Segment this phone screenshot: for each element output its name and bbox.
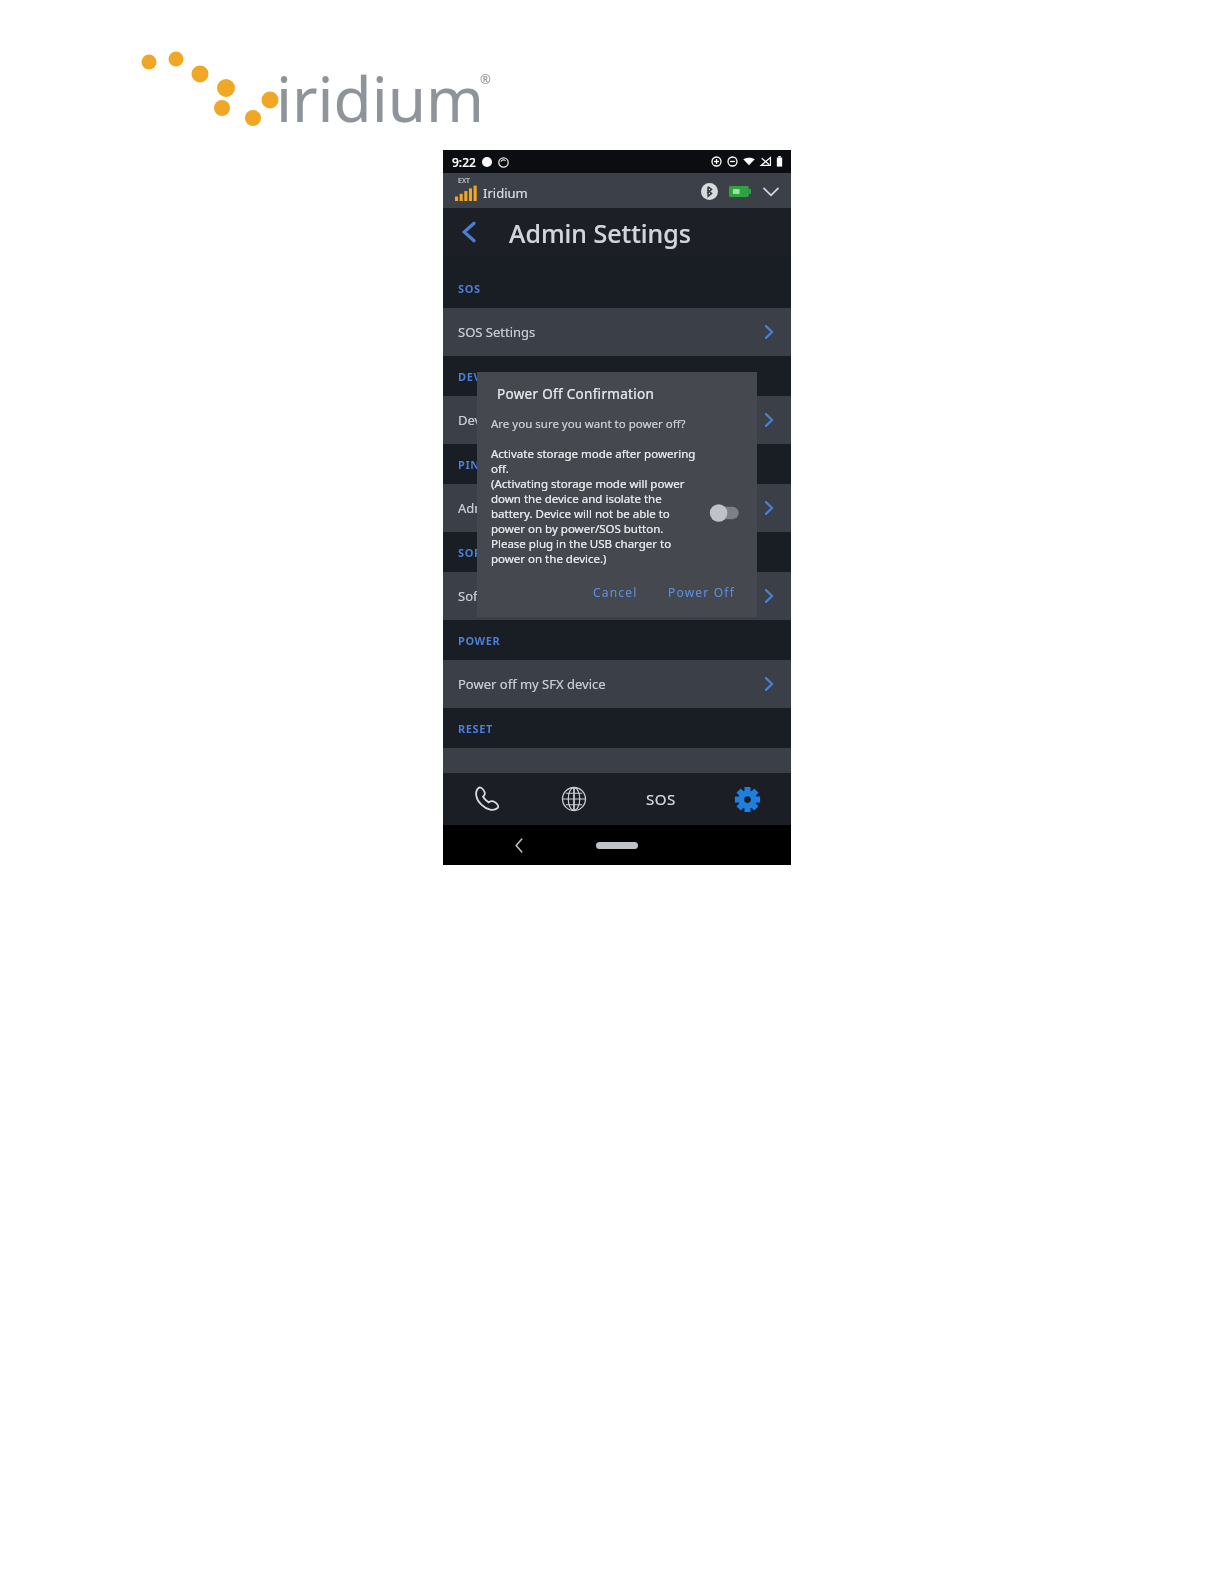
staticText: EXT — [458, 176, 470, 186]
staticText: SOFTWARE — [458, 545, 522, 560]
staticText: SOS — [646, 789, 676, 809]
staticText: Power Off Confirmation — [497, 385, 655, 403]
staticText: Admin PIN — [458, 499, 524, 517]
staticText: ® — [480, 70, 491, 88]
staticText: Admin Settings — [509, 216, 691, 250]
staticText: Cancel — [593, 584, 638, 600]
button[interactable]: Network — [530, 773, 617, 825]
button[interactable]: Power Off — [660, 579, 743, 605]
button[interactable]: Call — [443, 773, 530, 825]
button[interactable]: Cancel — [585, 579, 646, 605]
staticText: RESET — [458, 721, 493, 736]
staticText: Are you sure you want to power off? — [491, 416, 686, 432]
staticText: SOS Settings — [458, 323, 536, 341]
button[interactable]: SOS — [617, 773, 704, 825]
staticText: POWER — [458, 633, 501, 648]
button[interactable]: Software Update — [443, 572, 791, 620]
staticText: Power Off — [668, 584, 735, 600]
staticText: 9:22 — [452, 154, 476, 170]
staticText: Iridium — [483, 184, 528, 202]
button[interactable]: Admin PIN — [443, 484, 791, 532]
staticText: Power off my SFX device — [458, 675, 606, 693]
button[interactable]: Activate storage mode — [706, 502, 748, 524]
staticText: Device Settings — [458, 411, 551, 429]
button[interactable]: SOS Settings — [443, 308, 791, 356]
staticText: iridium — [276, 56, 485, 140]
button[interactable]: Expand — [761, 181, 781, 201]
button[interactable]: Settings — [704, 773, 791, 825]
staticText: SOS — [458, 281, 481, 296]
staticText: PIN — [458, 457, 480, 472]
staticText: DEVICE — [458, 369, 501, 384]
button[interactable]: Power off my SFX device — [443, 660, 791, 708]
button[interactable]: Device Settings — [443, 396, 791, 444]
button[interactable]: Back — [455, 218, 483, 246]
staticText: Software Update — [458, 587, 561, 605]
staticText: Activate storage mode after powering off… — [491, 446, 701, 566]
